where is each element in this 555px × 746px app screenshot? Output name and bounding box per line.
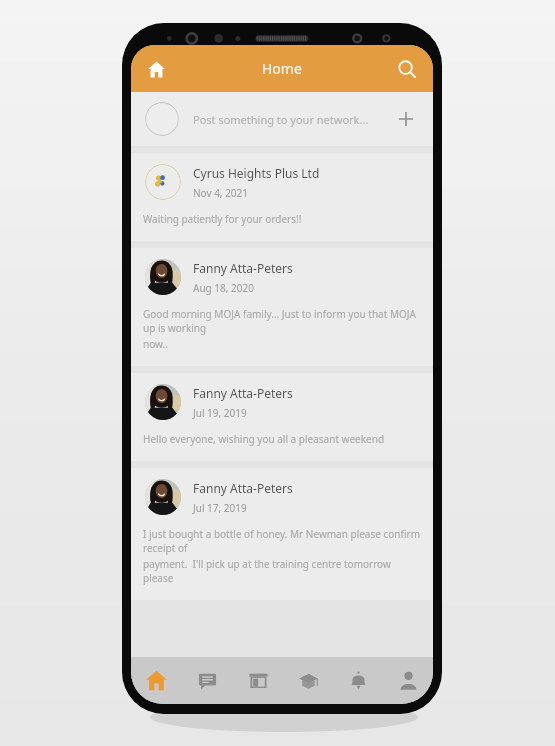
staticText: Home [262,59,302,78]
button[interactable]: Home [139,52,173,86]
button[interactable]: Messages [182,657,233,704]
staticText: Jul 19, 2019 [193,406,247,420]
staticText: Aug 18, 2020 [193,281,254,295]
staticText: now.. [143,337,168,351]
button[interactable]: Learning [283,657,333,704]
button[interactable]: Search [390,52,424,86]
button[interactable]: Fanny Atta-Peters [131,248,433,366]
staticText: Fanny Atta-Peters [193,260,293,276]
staticText: Hello everyone, wishing you all a pleasa… [143,432,385,446]
button[interactable]: Post something to your network... [131,92,433,146]
staticText: I just bought a bottle of honey. Mr Newm… [143,527,421,555]
staticText: Fanny Atta-Peters [193,480,293,496]
button[interactable]: Fanny Atta-Peters [131,468,433,600]
button[interactable]: Add post [393,106,419,132]
staticText: Fanny Atta-Peters [193,385,293,401]
button[interactable]: Home [131,657,182,704]
button[interactable]: Cyrus Heights Plus Ltd [131,153,433,241]
staticText: Good morning MOJA family... Just to info… [143,307,421,335]
staticText: Nov 4, 2021 [193,186,249,200]
staticText: Cyrus Heights Plus Ltd [193,165,320,181]
staticText: Jul 17, 2019 [193,501,247,515]
staticText: payment. I'll pick up at the training ce… [143,557,421,585]
button[interactable]: Fanny Atta-Peters [131,373,433,461]
button[interactable]: Profile [383,657,433,704]
button[interactable]: Notifications [333,657,383,704]
button[interactable]: Store [233,657,283,704]
staticText: Waiting patiently for your orders!! [143,212,302,226]
staticText: Post something to your network... [193,112,393,127]
